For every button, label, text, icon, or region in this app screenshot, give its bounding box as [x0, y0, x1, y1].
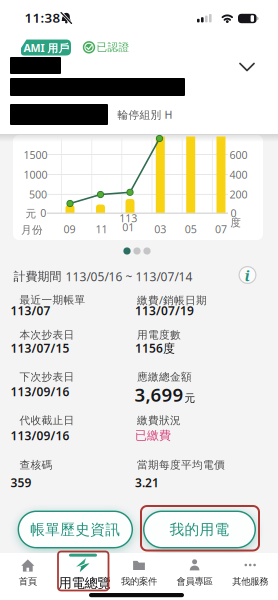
- staticText: 3,699: [134, 382, 183, 407]
- button[interactable]: 首頁: [0, 555, 55, 588]
- button[interactable]: 其他服務: [223, 555, 278, 588]
- staticText: 03: [154, 222, 166, 236]
- staticText: 用電度數: [137, 328, 181, 341]
- staticText: 500: [29, 187, 47, 201]
- staticText: 度: [230, 216, 241, 229]
- staticText: 1156度: [135, 340, 175, 356]
- staticText: 0: [231, 206, 237, 220]
- staticText: 已繳費: [135, 428, 171, 443]
- staticText: 359: [10, 474, 31, 490]
- staticText: 1500: [24, 148, 48, 162]
- staticText: i: [244, 265, 249, 285]
- staticText: 09: [63, 222, 75, 236]
- staticText: 113: [119, 211, 137, 225]
- button[interactable]: 展開帳戶資訊: [0, 0, 278, 600]
- button[interactable]: 用電總覽: [56, 555, 111, 588]
- staticText: 其他服務: [232, 576, 268, 587]
- staticText: AMI 用戶: [23, 41, 69, 55]
- staticText: 元: [25, 207, 36, 220]
- staticText: 查核碼: [19, 458, 52, 471]
- staticText: 3.21: [135, 474, 159, 490]
- staticText: 1000: [24, 167, 48, 182]
- staticText: 會員專區: [177, 576, 213, 587]
- staticText: 113/07/19: [135, 302, 194, 318]
- staticText: 05: [185, 222, 197, 236]
- staticText: 07: [215, 222, 227, 236]
- staticText: 已認證: [96, 41, 129, 54]
- button[interactable]: 我的案件: [111, 555, 166, 588]
- staticText: 應繳總金額: [137, 370, 192, 383]
- staticText: 本次抄表日: [19, 328, 74, 341]
- staticText: 113/09/16: [10, 383, 69, 399]
- staticText: 當期每度平均電價: [137, 458, 225, 471]
- staticText: 113/09/16: [10, 427, 69, 443]
- staticText: 200: [230, 187, 248, 201]
- staticText: 0: [40, 206, 46, 220]
- staticText: 11: [95, 222, 107, 236]
- staticText: 繳費狀況: [137, 414, 181, 427]
- staticText: 我的用電: [169, 520, 229, 538]
- staticText: 計費期間: [13, 269, 65, 284]
- staticText: 113/07: [10, 302, 50, 318]
- button[interactable]: 帳單歷史資訊: [17, 510, 133, 548]
- staticText: 月份: [21, 223, 43, 236]
- staticText: 輪停組別 H: [117, 107, 172, 122]
- staticText: 113/07/15: [10, 340, 69, 356]
- staticText: 600: [230, 148, 248, 162]
- staticText: 用電總覽: [58, 575, 110, 591]
- staticText: 帳單歷史資訊: [30, 520, 120, 538]
- staticText: 下次抄表日: [19, 370, 74, 383]
- button[interactable]: 我的用電: [143, 510, 256, 548]
- staticText: 11:38: [24, 9, 60, 26]
- staticText: 繳費/銷帳日期: [137, 293, 207, 307]
- staticText: 113/05/16 ~ 113/07/14: [65, 268, 192, 284]
- staticText: 400: [230, 167, 248, 182]
- staticText: 最近一期帳單: [19, 293, 85, 306]
- staticText: 代收截止日: [19, 414, 74, 427]
- staticText: 我的案件: [121, 576, 157, 587]
- staticText: 元: [184, 392, 195, 405]
- staticText: 01: [122, 220, 134, 234]
- button[interactable]: 會員專區: [167, 555, 222, 588]
- staticText: 首頁: [19, 576, 37, 587]
- button[interactable]: 計費期間說明: [0, 0, 278, 600]
